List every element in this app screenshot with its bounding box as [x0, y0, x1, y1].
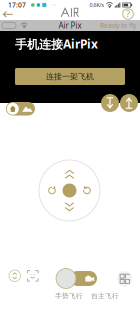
button[interactable]: Shutter — [56, 268, 97, 289]
staticText: Ready to fly — [100, 21, 136, 30]
button[interactable]: Return to home — [6, 102, 35, 115]
staticText: 手势飞行 — [55, 292, 83, 300]
staticText: ··· — [50, 1, 56, 9]
button[interactable]: Altitude — [9, 270, 20, 281]
button[interactable]: Face tracking — [27, 270, 38, 281]
staticText: 连接一架飞机 — [46, 72, 94, 81]
button[interactable]: Gallery — [117, 271, 132, 286]
button[interactable]: Help — [120, 6, 136, 22]
button[interactable]: 连接一架飞机 — [15, 68, 125, 85]
staticText: Air Pix — [58, 20, 81, 31]
staticText: 自主飞行 — [91, 292, 119, 300]
button[interactable]: Take off — [120, 94, 138, 112]
button[interactable]: Flight control pad — [39, 160, 100, 221]
button[interactable]: Land — [101, 94, 119, 112]
staticText: 手机连接AirPix — [15, 36, 98, 52]
staticText: 17:07 — [8, 1, 26, 9]
staticText: ? — [126, 7, 130, 20]
staticText: 0.6K/s — [89, 1, 104, 9]
button[interactable]: Back — [0, 8, 16, 20]
